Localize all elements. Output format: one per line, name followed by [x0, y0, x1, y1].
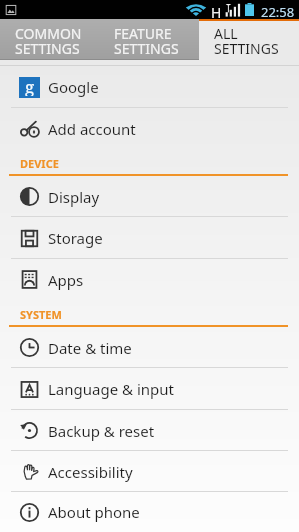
staticText: Accessibility	[48, 462, 133, 482]
button[interactable]: FEATURE SETTINGS	[99, 19, 199, 60]
button[interactable]: Apps	[0, 259, 299, 300]
staticText: Storage	[48, 228, 103, 248]
staticText: Google	[48, 77, 99, 97]
staticText: Backup & reset	[48, 421, 155, 441]
button[interactable]: Storage	[0, 217, 299, 259]
button[interactable]: Add account	[0, 108, 299, 149]
button[interactable]: Date & time	[0, 327, 299, 368]
button[interactable]: Accessibility	[0, 451, 299, 492]
button[interactable]: Display	[0, 176, 299, 217]
staticText: COMMON SETTINGS	[15, 24, 82, 58]
staticText: 22:58	[261, 3, 295, 21]
staticText: H	[211, 3, 222, 22]
button[interactable]: About phone	[0, 492, 299, 532]
staticText: g	[25, 75, 35, 96]
staticText: SYSTEM	[20, 307, 62, 322]
staticText: FEATURE SETTINGS	[114, 24, 179, 58]
button[interactable]: g	[0, 66, 299, 108]
staticText: Add account	[48, 119, 136, 139]
button[interactable]: COMMON SETTINGS	[0, 19, 99, 60]
staticText: DEVICE	[20, 156, 59, 171]
button[interactable]: Backup & reset	[0, 410, 299, 451]
staticText: About phone	[48, 502, 140, 522]
staticText: Display	[48, 187, 100, 207]
button[interactable]: ALL SETTINGS	[199, 19, 299, 60]
staticText: Date & time	[48, 338, 132, 358]
staticText: Apps	[48, 270, 84, 290]
staticText: Language & input	[48, 379, 174, 399]
button[interactable]: Language & input	[0, 368, 299, 410]
staticText: ALL SETTINGS	[214, 24, 279, 58]
